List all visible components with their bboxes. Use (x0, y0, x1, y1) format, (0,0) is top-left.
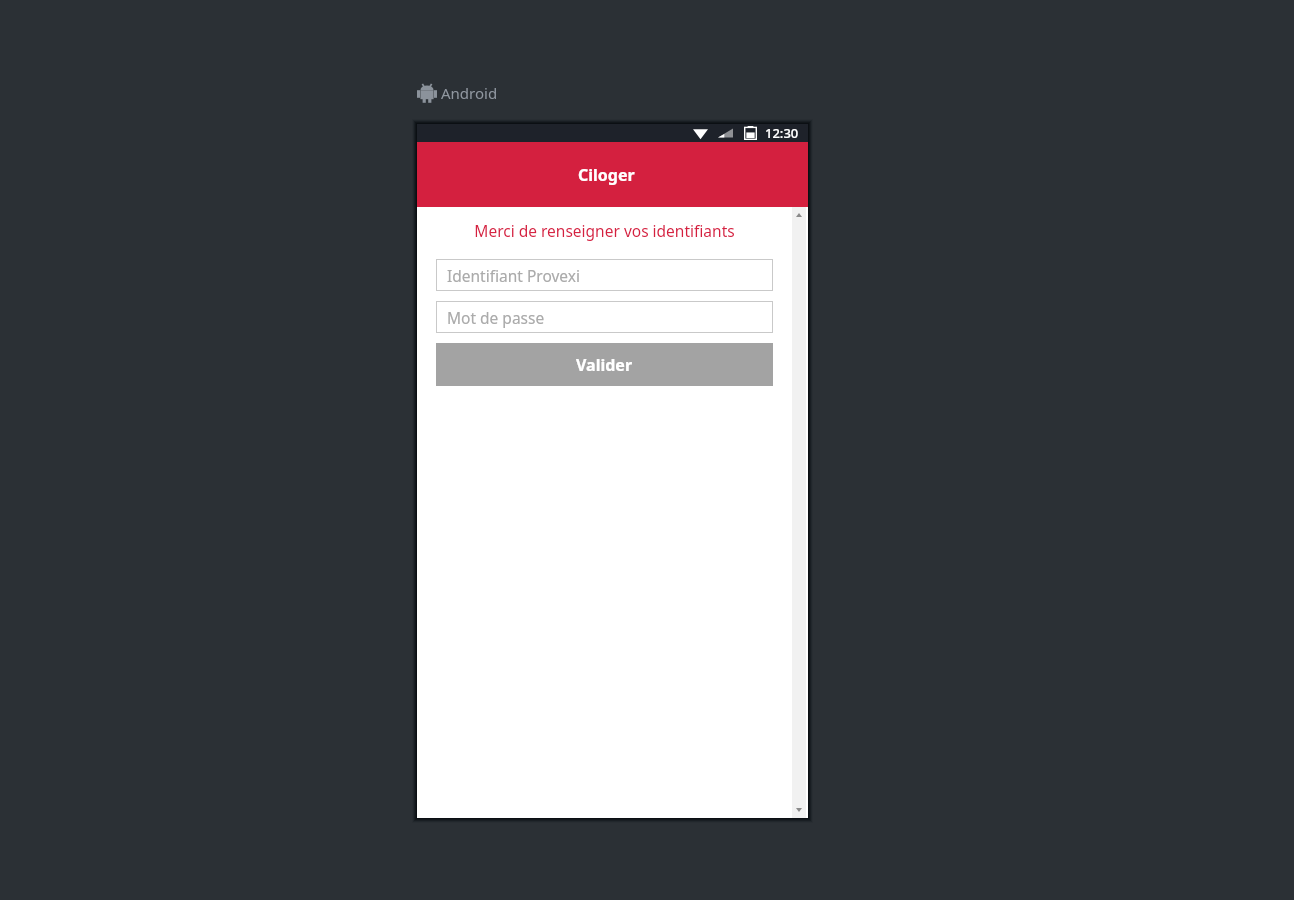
staticText: Identifiant Provexi (447, 265, 580, 286)
staticText: Merci de renseigner vos identifiants (417, 220, 792, 241)
other: Battery (744, 126, 757, 140)
staticText: Valider (576, 354, 633, 376)
button[interactable]: Identifiant Provexi (436, 259, 773, 291)
staticText: Ciloger (578, 164, 635, 186)
button[interactable]: Scroll down (792, 803, 806, 818)
other: Wi-Fi (693, 127, 708, 140)
staticText: 12:30 (765, 124, 799, 142)
button[interactable]: Mot de passe (436, 301, 773, 333)
staticText: Android (441, 83, 498, 103)
staticText: Mot de passe (447, 307, 545, 328)
button[interactable]: Scroll up (792, 207, 806, 222)
button[interactable]: Ciloger (417, 142, 808, 207)
button[interactable]: Valider (436, 343, 773, 386)
other: Mobile signal (718, 127, 733, 139)
